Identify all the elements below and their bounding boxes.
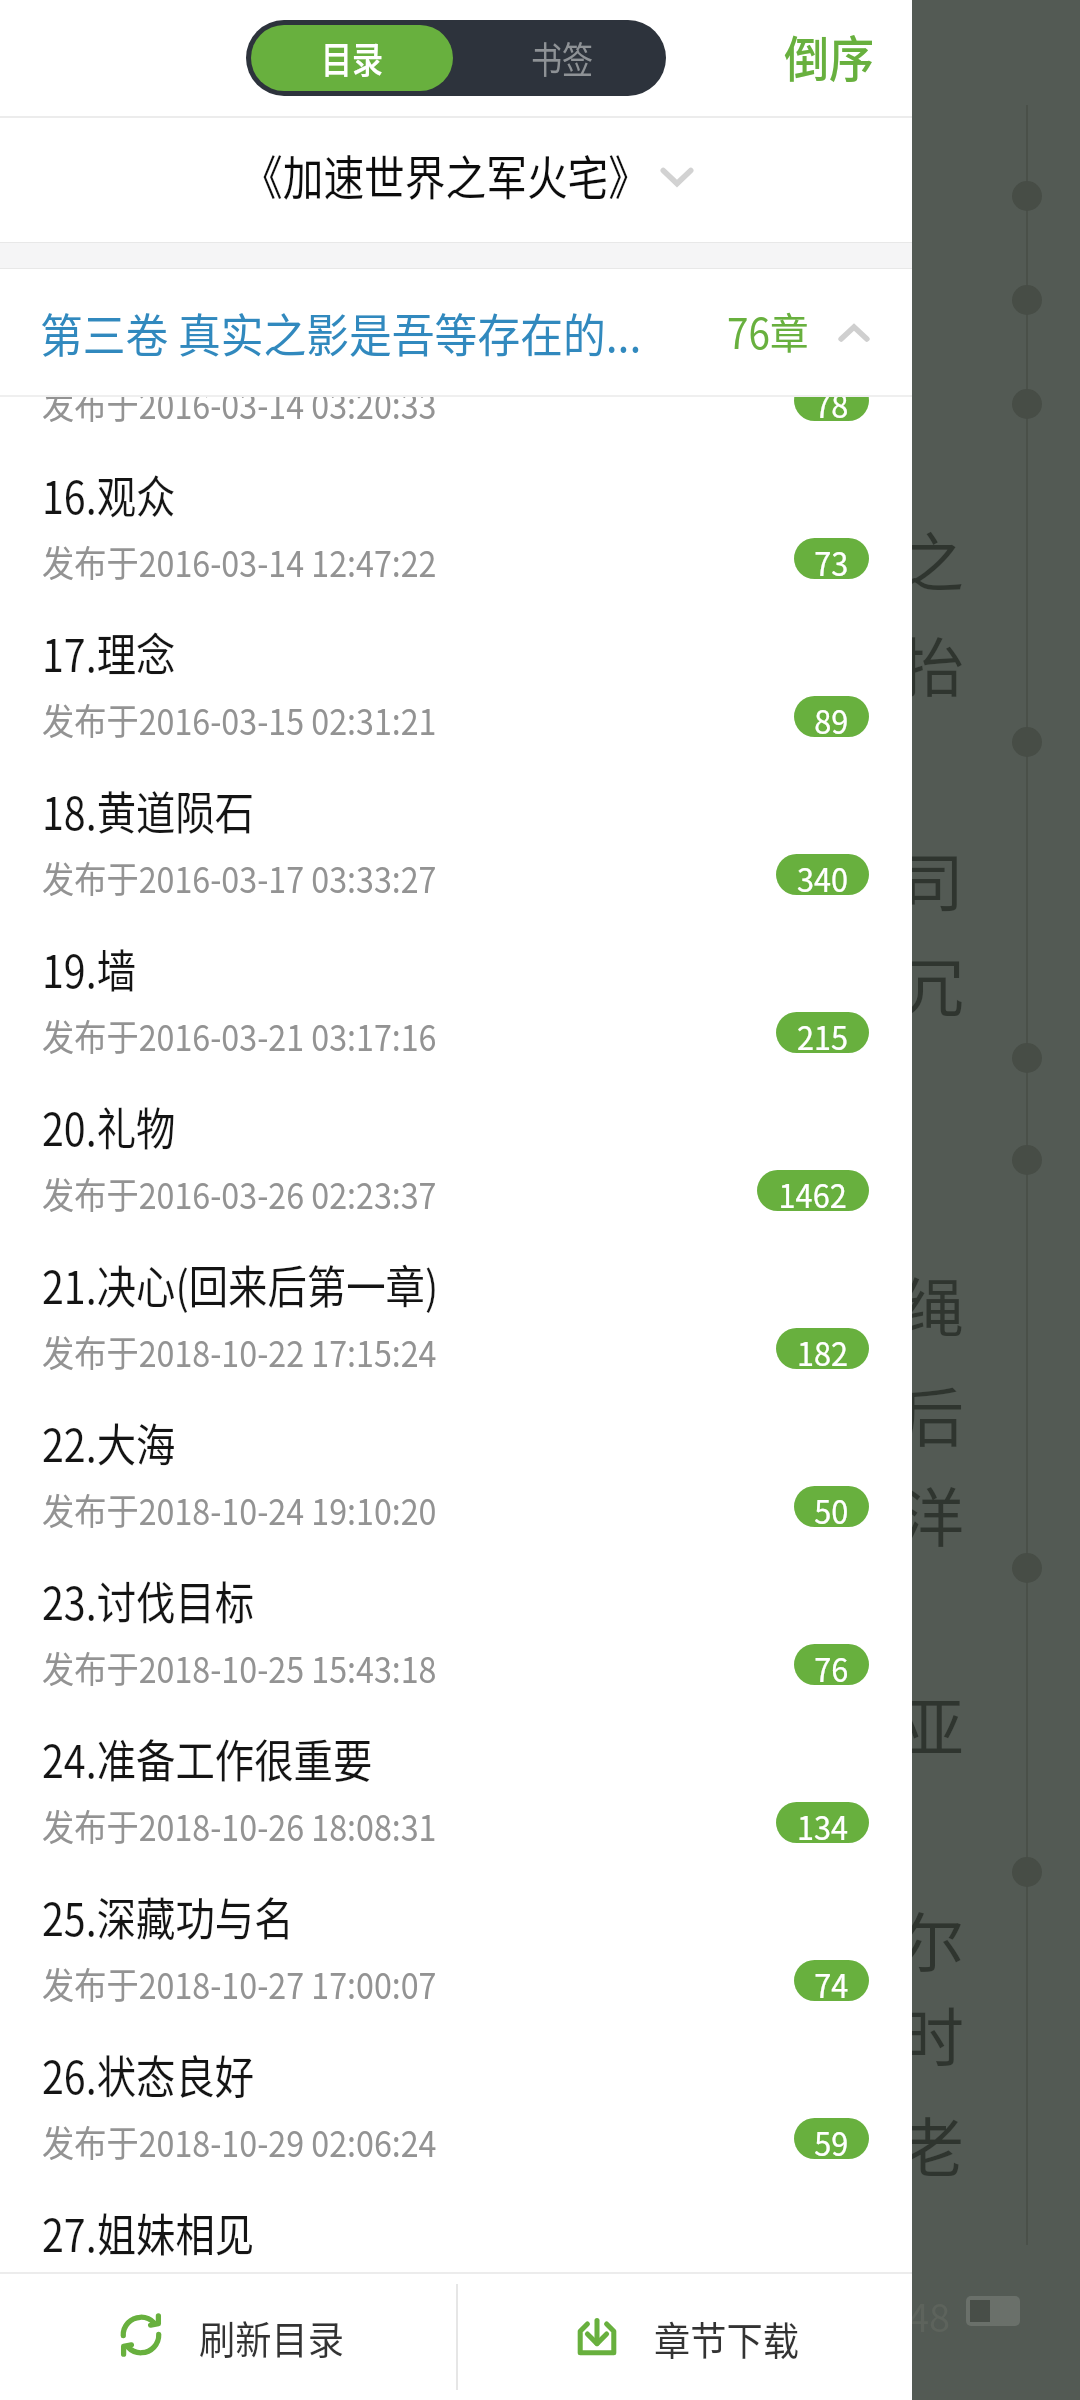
staticText: 22.大海 (42, 1410, 176, 1475)
staticText: 340 (797, 854, 848, 895)
staticText: 发布于2018-10-29 02:06:24 (42, 2115, 437, 2167)
staticText: 书签 (531, 31, 593, 85)
button[interactable]: 第三卷 真实之影是吾等存在的... (0, 269, 912, 397)
staticText: 绳 (900, 1257, 964, 1350)
button[interactable]: 26.状态良好 (0, 2011, 912, 2169)
button[interactable]: 18.黄道陨石 (0, 747, 912, 905)
staticText: 26.状态良好 (42, 2042, 255, 2107)
button[interactable]: 15.回归 (0, 273, 912, 431)
staticText: 21.决心(回来后第一章) (42, 1252, 438, 1317)
staticText: 第三卷 真实之影是吾等存在的... (40, 299, 642, 366)
button[interactable]: 《加速世界之军火宅》 (0, 118, 912, 243)
staticText: 倒序 (784, 20, 875, 91)
staticText: 发布于2018-10-26 18:08:31 (42, 1799, 437, 1851)
staticText: 1462 (779, 1170, 847, 1211)
staticText: 23.讨伐目标 (42, 1568, 255, 1633)
button[interactable]: 章节下载 (458, 2274, 912, 2400)
staticText: 冗 (900, 937, 964, 1030)
other: Collapse volume (839, 323, 869, 343)
staticText: 发布于2016-03-15 02:31:21 (42, 693, 437, 745)
button[interactable]: 24.准备工作很重要 (0, 1695, 912, 1853)
staticText: 134 (797, 1802, 848, 1843)
button[interactable]: 20.礼物 (0, 1063, 912, 1221)
staticText: 59 (814, 2118, 849, 2159)
staticText: 司 (900, 832, 964, 925)
staticText: 17.理念 (42, 620, 176, 685)
button[interactable]: 25.深藏功与名 (0, 1853, 912, 2011)
staticText: 215 (797, 1012, 848, 1053)
button[interactable]: 23.讨伐目标 (0, 1537, 912, 1695)
staticText: 章节下载 (654, 2310, 800, 2366)
staticText: 74 (814, 1960, 849, 2001)
staticText: 182 (797, 1328, 848, 1369)
staticText: 20.礼物 (42, 1094, 176, 1159)
staticText: 抬 (900, 617, 964, 710)
staticText: 尔 (900, 1892, 964, 1985)
staticText: 76章 (727, 300, 809, 361)
staticText: 发布于2018-10-27 17:00:07 (42, 1957, 437, 2009)
staticText: 发布于2016-03-14 03:20:33 (42, 377, 437, 429)
staticText: 目录 (321, 31, 383, 85)
staticText: 刷新目录 (199, 2309, 345, 2365)
staticText: 24.准备工作很重要 (42, 1726, 373, 1791)
staticText: 48 (908, 2288, 951, 2343)
staticText: 发布于2016-03-17 03:33:27 (42, 851, 437, 903)
staticText: 发布于2016-03-26 02:23:37 (42, 1167, 437, 1219)
button[interactable]: 21.决心(回来后第一章) (0, 1221, 912, 1379)
staticText: 发布于2018-10-22 17:15:24 (42, 1325, 437, 1377)
button[interactable]: 目录 (251, 25, 453, 91)
staticText: 后 (900, 1367, 964, 1460)
staticText: 时 (900, 1987, 964, 2080)
staticText: 洋 (900, 1467, 964, 1560)
staticText: 78 (814, 380, 849, 421)
button[interactable]: 22.大海 (0, 1379, 912, 1537)
button[interactable]: 27.姐妹相见 (0, 2169, 912, 2273)
staticText: 18.黄道陨石 (42, 778, 255, 843)
staticText: 50 (814, 1486, 849, 1527)
staticText: 25.深藏功与名 (42, 1884, 294, 1949)
button[interactable]: 16.观众 (0, 431, 912, 589)
staticText: 之 (900, 512, 964, 605)
button[interactable]: 刷新目录 (0, 2274, 456, 2400)
staticText: 27.姐妹相见 (42, 2200, 255, 2265)
staticText: 73 (814, 538, 849, 579)
staticText: 老 (900, 2097, 964, 2190)
button[interactable]: 19.墙 (0, 905, 912, 1063)
staticText: 发布于2018-10-24 19:10:20 (42, 1483, 437, 1535)
other: Choose book (661, 166, 693, 188)
staticText: 76 (814, 1644, 849, 1685)
staticText: 16.观众 (42, 462, 176, 527)
button[interactable]: 17.理念 (0, 589, 912, 747)
staticText: 发布于2016-03-14 12:47:22 (42, 535, 437, 587)
staticText: 19.墙 (42, 936, 136, 1001)
staticText: 89 (814, 696, 849, 737)
staticText: 亚 (900, 1677, 964, 1770)
staticText: 15.回归 (42, 304, 176, 369)
staticText: 发布于2016-03-21 03:17:16 (42, 1009, 437, 1061)
staticText: 《加速世界之军火宅》 (242, 140, 649, 208)
button[interactable]: 书签 (458, 20, 666, 96)
staticText: 发布于2018-10-25 15:43:18 (42, 1641, 437, 1693)
button[interactable]: 倒序 (752, 10, 912, 108)
